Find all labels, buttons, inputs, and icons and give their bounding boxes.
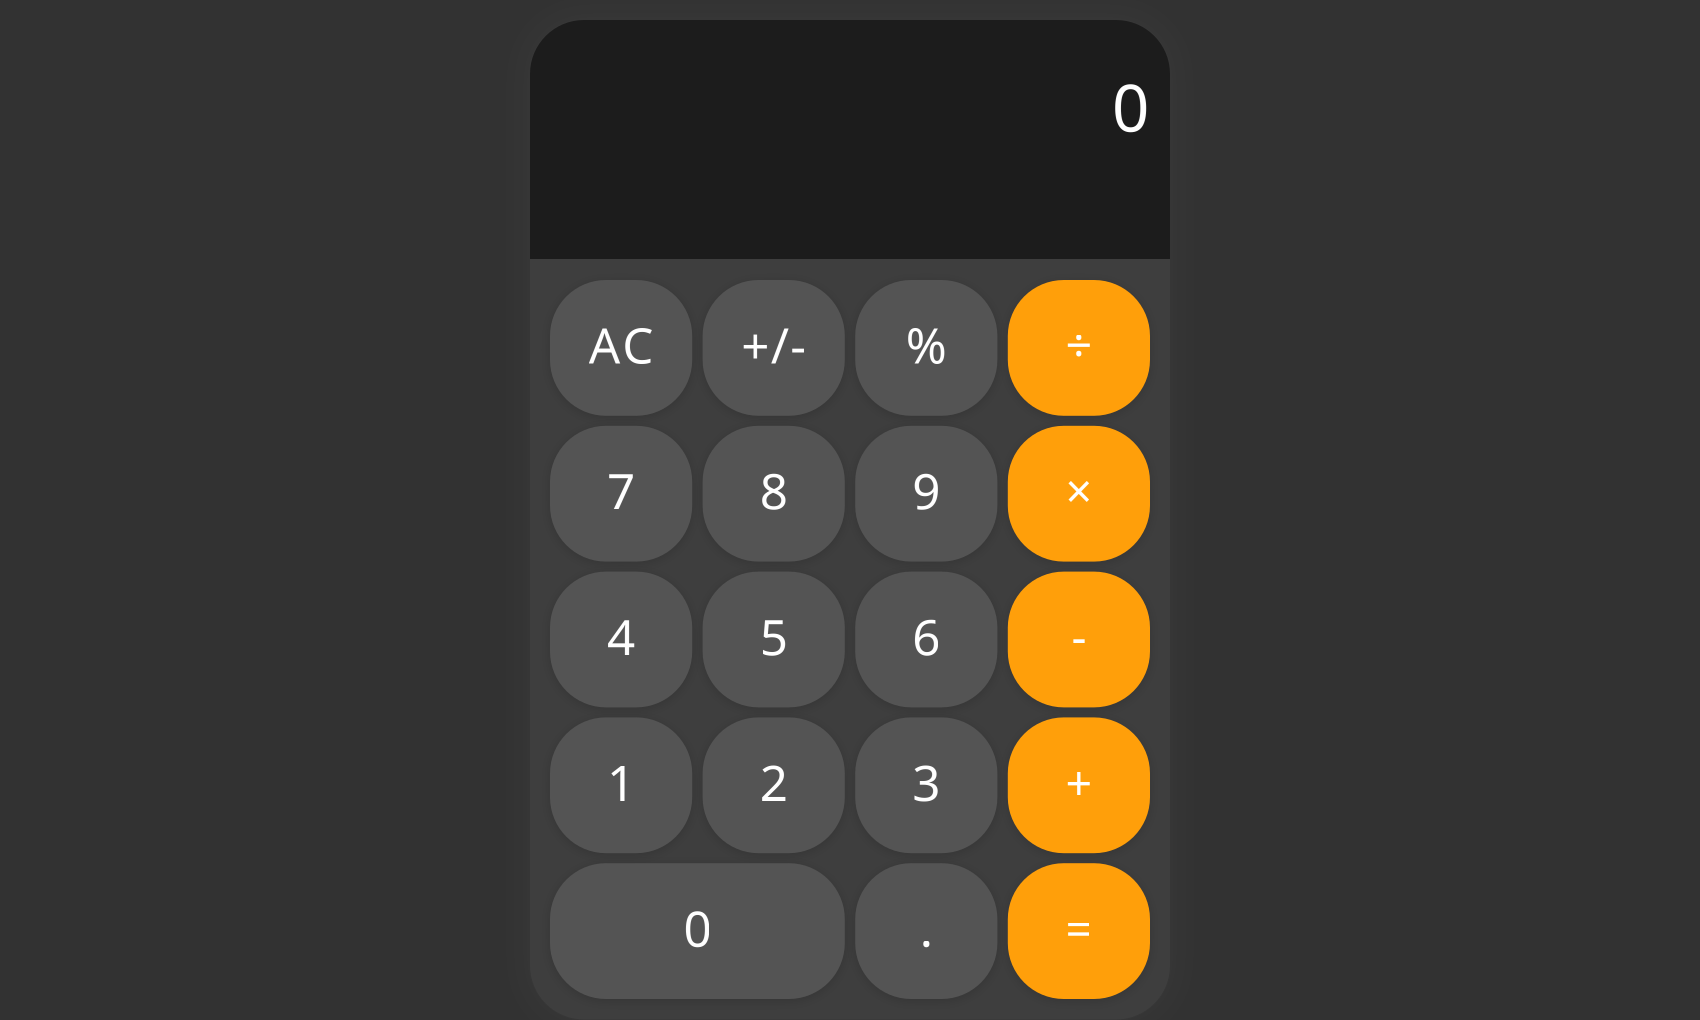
button[interactable]: Plus minus [703, 280, 845, 416]
button[interactable]: 5 [703, 572, 845, 707]
staticText: 4 [607, 603, 635, 669]
staticText: 6 [912, 603, 940, 669]
button[interactable]: Plus [1008, 717, 1150, 853]
button[interactable]: 3 [855, 717, 997, 853]
button[interactable]: 1 [550, 717, 692, 853]
button[interactable]: 4 [550, 572, 692, 707]
button[interactable]: 0 [550, 863, 845, 999]
staticText: 9 [912, 457, 940, 523]
button[interactable]: All clear [550, 280, 692, 416]
button[interactable]: Minus [1008, 572, 1150, 707]
button[interactable]: Divide [1008, 280, 1150, 416]
staticText: AC [589, 312, 653, 377]
staticText: 2 [760, 749, 788, 814]
button[interactable]: 2 [703, 717, 845, 853]
staticText: . [920, 895, 933, 960]
staticText: 0 [683, 895, 711, 960]
button[interactable]: 6 [855, 572, 997, 707]
button[interactable]: 7 [550, 426, 692, 562]
staticText: ÷ [1065, 313, 1092, 375]
button[interactable]: Equals [1008, 863, 1150, 999]
staticText: +/- [741, 312, 806, 377]
button[interactable]: Decimal point [855, 863, 997, 999]
button[interactable]: 8 [703, 426, 845, 562]
staticText: 3 [912, 749, 940, 814]
staticText: % [906, 312, 947, 377]
staticText: - [1071, 605, 1086, 667]
staticText: 5 [760, 603, 788, 669]
staticText: + [1065, 751, 1092, 813]
button[interactable]: Multiply [1008, 426, 1150, 562]
staticText: 7 [607, 457, 635, 523]
staticText: 1 [607, 749, 635, 814]
staticText: 8 [760, 457, 788, 523]
staticText: × [1065, 459, 1092, 521]
button[interactable]: 9 [855, 426, 997, 562]
button[interactable]: Percent [855, 280, 997, 416]
staticText: 0 [1112, 63, 1149, 150]
staticText: = [1065, 897, 1092, 959]
